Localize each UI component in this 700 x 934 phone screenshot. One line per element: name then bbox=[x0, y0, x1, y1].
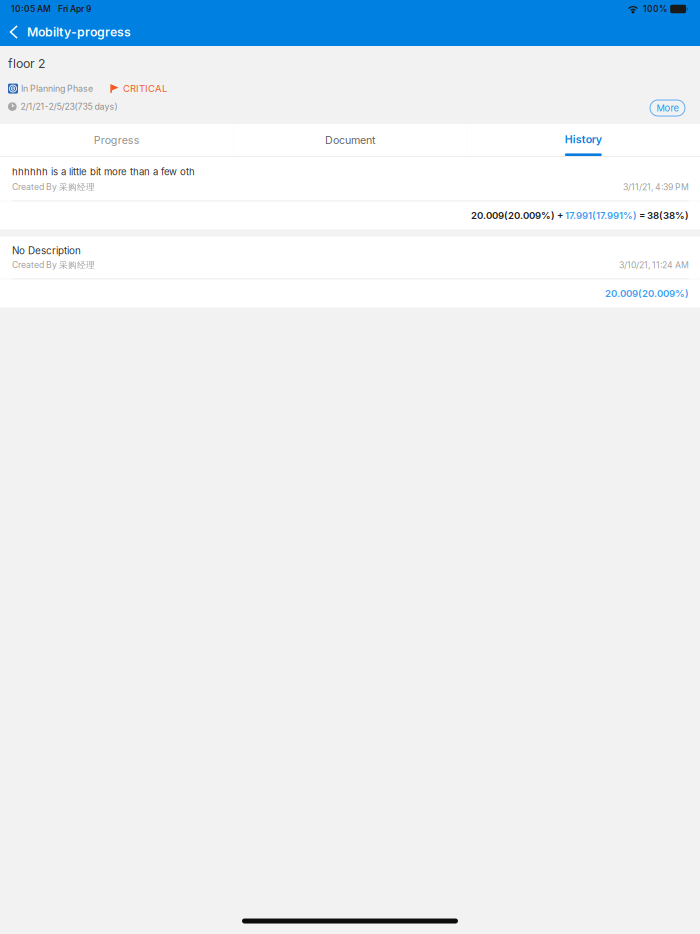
staticText: Document bbox=[325, 133, 375, 146]
staticText: 17.991(17.991%) bbox=[565, 210, 637, 221]
button[interactable]: Document bbox=[233, 124, 467, 156]
staticText: Created By 采购经理 bbox=[12, 259, 95, 270]
button[interactable]: More bbox=[650, 100, 685, 116]
staticText: 3/10/21, 11:24 AM bbox=[619, 260, 689, 270]
staticText: In Planning Phase bbox=[21, 83, 93, 94]
staticText: Mobilty-progress bbox=[27, 25, 131, 39]
staticText: History bbox=[565, 133, 602, 146]
staticText: Progress bbox=[94, 133, 140, 146]
staticText: 3/11/21, 4:39 PM bbox=[623, 182, 689, 192]
staticText: Fri Apr 9 bbox=[58, 4, 91, 14]
staticText: floor 2 bbox=[8, 56, 45, 71]
staticText: hhhhhh is a little bit more than a few o… bbox=[12, 166, 195, 178]
staticText: 20.009(20.009%) bbox=[605, 288, 689, 299]
button[interactable]: History bbox=[467, 124, 700, 156]
staticText: More bbox=[656, 102, 678, 114]
staticText: 100% bbox=[643, 4, 667, 14]
staticText: 20.009(20.009%) + bbox=[471, 210, 565, 221]
staticText: = 38(38%) bbox=[637, 210, 689, 221]
staticText: 2/1/21-2/5/23(735 days) bbox=[21, 101, 118, 112]
staticText: 10:05 AM bbox=[11, 4, 51, 14]
staticText: No Description bbox=[12, 245, 81, 256]
staticText: CRITICAL bbox=[123, 83, 167, 94]
button[interactable]: Progress bbox=[0, 124, 233, 156]
button[interactable]: Back bbox=[1, 18, 27, 46]
staticText: Created By 采购经理 bbox=[12, 182, 95, 193]
